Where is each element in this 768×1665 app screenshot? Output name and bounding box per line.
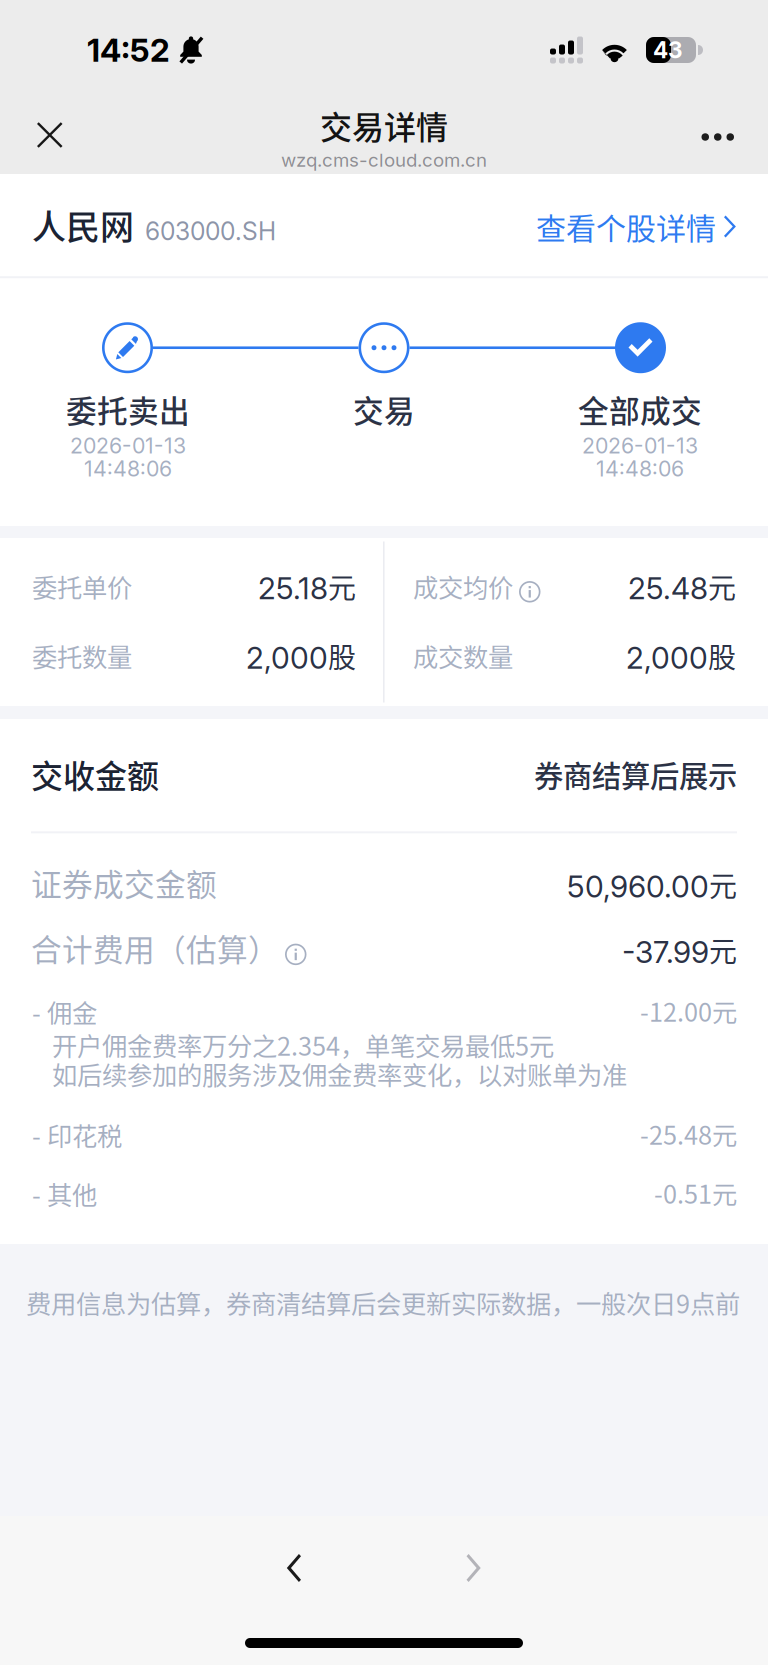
staticText: 元	[708, 566, 736, 606]
staticText: 股	[328, 635, 356, 676]
staticText: 14:48:06	[596, 456, 684, 482]
staticText: -25.48元	[640, 1115, 737, 1152]
staticText: 25.18	[258, 570, 328, 606]
staticText: 50,960.00	[567, 868, 709, 905]
staticText: 成交数量	[413, 637, 513, 674]
staticText: 元	[328, 566, 356, 606]
button[interactable]: Back	[256, 1542, 332, 1594]
staticText: wzq.cms-cloud.com.cn	[281, 149, 487, 171]
staticText: 元	[709, 930, 737, 970]
staticText: 开户佣金费率万分之2.354，单笔交易最低5元	[52, 1026, 554, 1063]
button[interactable]: More options	[675, 101, 768, 173]
staticText: -12.00元	[640, 992, 737, 1029]
staticText: 合计费用（估算）	[31, 926, 279, 970]
staticText: 交收金额	[31, 751, 159, 797]
staticText: - 佣金	[32, 993, 97, 1030]
staticText: 2026-01-13	[582, 433, 698, 459]
staticText: 费用信息为估算，券商清结算后会更新实际数据，一般次日9点前	[26, 1284, 740, 1321]
staticText: 成交均价	[413, 568, 513, 605]
staticText: 委托数量	[32, 637, 132, 674]
button[interactable]: Close	[0, 100, 88, 174]
staticText: 股	[708, 635, 736, 676]
staticText: 委托单价	[32, 568, 132, 605]
staticText: 2,000	[626, 640, 708, 676]
staticText: 2026-01-13	[70, 433, 186, 459]
staticText: 交易详情	[320, 102, 448, 148]
staticText: 如后续参加的服务涉及佣金费率变化，以对账单为准	[52, 1055, 627, 1092]
staticText: 券商结算后展示	[534, 753, 737, 795]
staticText: 委托卖出	[66, 387, 190, 431]
staticText: -37.99	[622, 934, 709, 970]
staticText: 2,000	[246, 640, 328, 676]
staticText: 14:52	[87, 31, 170, 69]
staticText: 证券成交金额	[31, 860, 217, 905]
staticText: 25.48	[628, 570, 708, 606]
button[interactable]: Forward	[436, 1542, 512, 1594]
staticText: 43	[653, 36, 683, 64]
staticText: - 其他	[32, 1175, 97, 1212]
staticText: - 印花税	[32, 1116, 122, 1153]
staticText: 14:48:06	[84, 456, 172, 482]
staticText: 元	[709, 864, 737, 905]
staticText: 603000.SH	[145, 216, 276, 246]
staticText: 全部成交	[578, 387, 702, 431]
staticText: 交易	[353, 387, 415, 431]
staticText: 人民网	[32, 200, 134, 249]
staticText: -0.51元	[654, 1174, 737, 1211]
staticText: 查看个股详情	[536, 205, 716, 248]
button[interactable]: 查看个股详情	[536, 205, 736, 249]
